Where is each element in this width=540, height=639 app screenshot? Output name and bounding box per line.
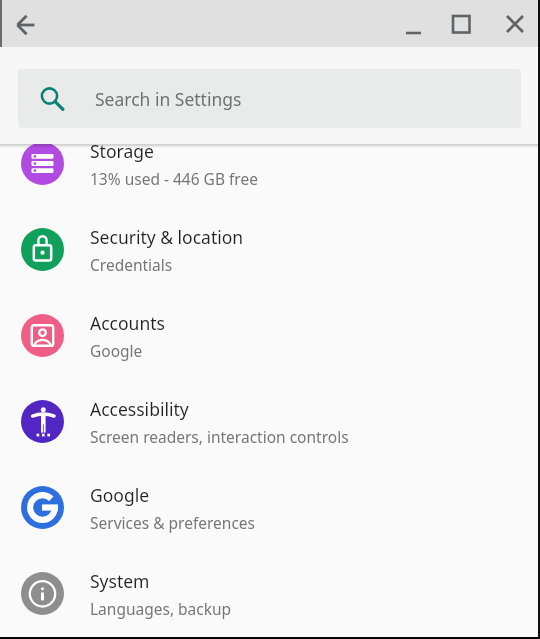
staticText: Accessibility — [90, 397, 189, 421]
staticText: Services & preferences — [90, 512, 255, 533]
button[interactable] — [10, 7, 44, 41]
button[interactable] — [444, 7, 478, 41]
staticText: Credentials — [90, 254, 173, 275]
staticText: Screen readers, interaction controls — [90, 426, 349, 447]
staticText: Google — [90, 483, 150, 507]
staticText: Security & location — [90, 225, 244, 249]
staticText: Storage — [90, 139, 154, 163]
staticText: Search in Settings — [95, 87, 242, 111]
staticText: 13% used - 446 GB free — [90, 168, 258, 189]
staticText: Languages, backup — [90, 598, 232, 619]
button[interactable]: Security & location — [0, 206, 540, 292]
button[interactable]: Accessibility — [0, 378, 540, 464]
button[interactable]: Google — [0, 464, 540, 550]
button[interactable]: Accounts — [0, 292, 540, 378]
button[interactable]: Search in Settings — [18, 69, 521, 128]
staticText: Google — [90, 340, 143, 361]
button[interactable] — [496, 7, 530, 41]
button[interactable]: System — [0, 550, 540, 636]
staticText: System — [90, 569, 150, 593]
button[interactable]: Storage — [0, 120, 540, 206]
button[interactable] — [392, 7, 426, 41]
staticText: Accounts — [90, 311, 165, 335]
